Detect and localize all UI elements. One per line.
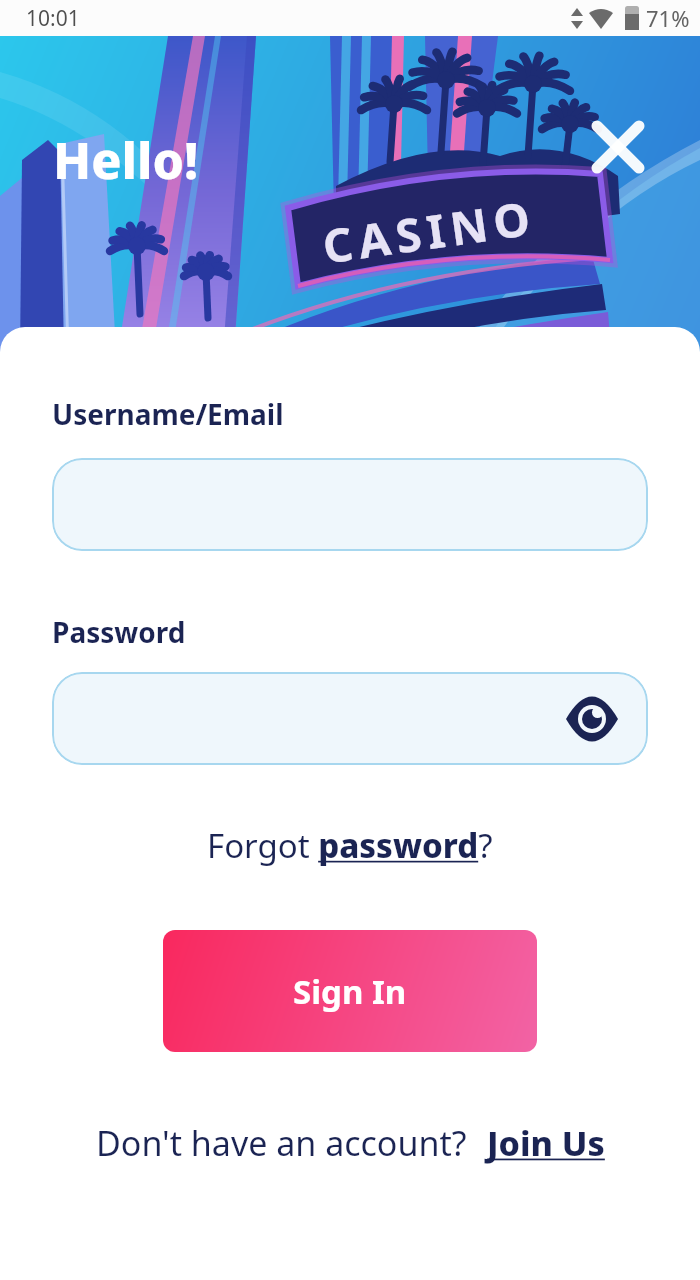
staticText: Don't have an account?	[96, 1120, 467, 1166]
staticText: Password	[52, 613, 186, 651]
staticText: CASINO	[319, 185, 540, 278]
staticText: 71%	[646, 3, 690, 33]
staticText: Username/Email	[52, 395, 284, 433]
button[interactable]	[584, 114, 652, 182]
button[interactable]	[52, 458, 648, 551]
button[interactable]: Sign In	[163, 930, 537, 1052]
staticText: 10:01	[26, 4, 80, 33]
staticText: Hello!	[53, 126, 199, 194]
button[interactable]: Forgot password?	[207, 823, 493, 868]
staticText: Sign In	[293, 969, 407, 1014]
button[interactable]	[566, 701, 618, 737]
button[interactable]: Join Us	[487, 1120, 605, 1166]
button[interactable]	[52, 672, 648, 765]
